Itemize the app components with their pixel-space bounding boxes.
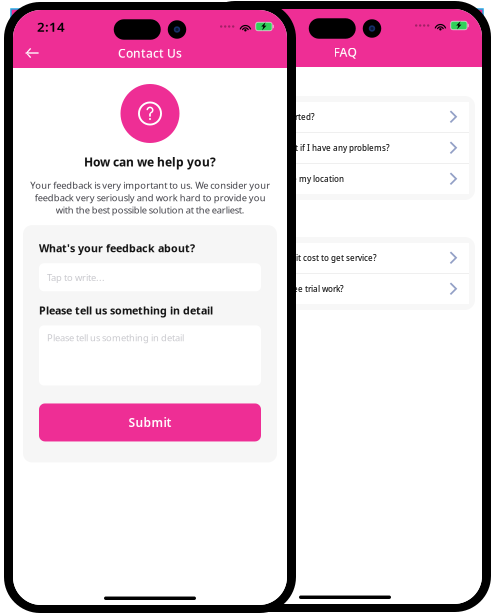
staticText: Your feedback is very important to us. W… xyxy=(30,179,270,216)
staticText: FAQ xyxy=(333,44,356,60)
staticText: Contact Us xyxy=(118,45,182,61)
staticText: How do I get started? xyxy=(232,112,315,122)
button[interactable]: How do I change my location xyxy=(221,164,469,194)
staticText: Please tell us something in detail xyxy=(47,331,184,344)
staticText: Who do I contact if I have any problems? xyxy=(232,143,390,153)
staticText: How much does it cost to get service? xyxy=(232,253,377,263)
staticText: What's your feedback about? xyxy=(39,241,195,255)
staticText: How do I change my location xyxy=(232,174,344,184)
staticText: How does the free trial work? xyxy=(232,284,344,294)
button[interactable]: How does the free trial work? xyxy=(221,274,469,304)
button[interactable]: Submit xyxy=(39,403,261,441)
staticText: Submit xyxy=(128,414,171,430)
button[interactable]: Tap to write... xyxy=(39,263,261,291)
button[interactable]: Please tell us something in detail xyxy=(39,325,261,385)
button[interactable]: How much does it cost to get service? xyxy=(221,243,469,273)
button[interactable]: Back xyxy=(13,43,63,63)
staticText: 2:14 xyxy=(37,18,65,35)
button[interactable]: How do I get started? xyxy=(221,102,469,132)
button[interactable]: Who do I contact if I have any problems? xyxy=(221,133,469,163)
staticText: Please tell us something in detail xyxy=(39,303,213,317)
staticText: How can we help you? xyxy=(84,154,216,170)
staticText: Tap to write... xyxy=(47,271,105,283)
